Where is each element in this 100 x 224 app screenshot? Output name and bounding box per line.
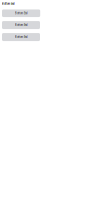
staticText: Bottom End [15,35,27,39]
staticText: Bottom End [15,11,27,15]
staticText: Bottom End [2,2,14,5]
staticText: Bottom End [15,23,27,27]
button[interactable]: Bottom End [2,33,40,41]
